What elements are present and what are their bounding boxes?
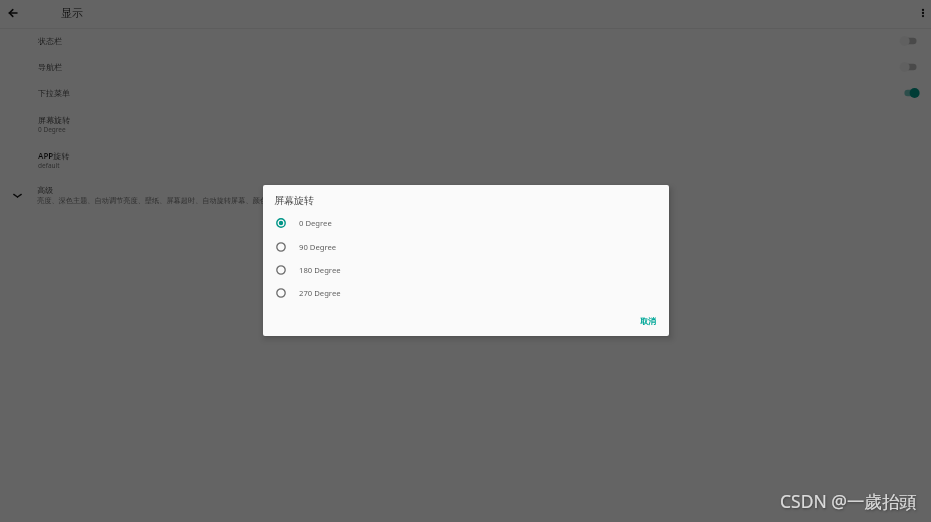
staticText: 0 Degree [299, 218, 332, 228]
button[interactable]: APP旋转 [0, 141, 931, 177]
staticText: 状态栏 [38, 36, 899, 46]
staticText: 高级 [37, 185, 53, 195]
staticText: 亮度、深色主题、自动调节亮度、壁纸、屏幕超时、自动旋转屏幕、颜色、 [37, 196, 275, 205]
button[interactable]: More options [913, 3, 931, 22]
button[interactable]: Switch on [899, 86, 920, 100]
staticText: 屏幕旋转 [274, 194, 314, 207]
button[interactable]: 90 Degree [263, 235, 669, 258]
button[interactable]: 取消 [635, 312, 661, 330]
button[interactable]: Switch off [899, 34, 920, 48]
button[interactable]: 高级 [0, 180, 931, 210]
button[interactable]: 下拉菜单 [0, 80, 931, 106]
staticText: 显示 [61, 6, 83, 20]
staticText: 屏幕旋转 [38, 115, 70, 125]
staticText: default [38, 161, 60, 170]
button[interactable]: 180 Degree [263, 258, 669, 281]
button[interactable]: Switch off [899, 60, 920, 74]
staticText: 导航栏 [38, 62, 899, 72]
staticText: 270 Degree [299, 288, 341, 298]
staticText: 90 Degree [299, 242, 337, 252]
staticText: 0 Degree [38, 125, 66, 134]
button[interactable]: Back [2, 2, 23, 23]
staticText: 180 Degree [299, 265, 341, 275]
staticText: 取消 [640, 316, 656, 326]
button[interactable]: 270 Degree [263, 281, 669, 304]
button[interactable]: 0 Degree [263, 211, 669, 234]
staticText: 下拉菜单 [38, 88, 899, 98]
staticText: APP旋转 [38, 150, 70, 161]
staticText: CSDN @一歲抬頭 [780, 489, 918, 513]
